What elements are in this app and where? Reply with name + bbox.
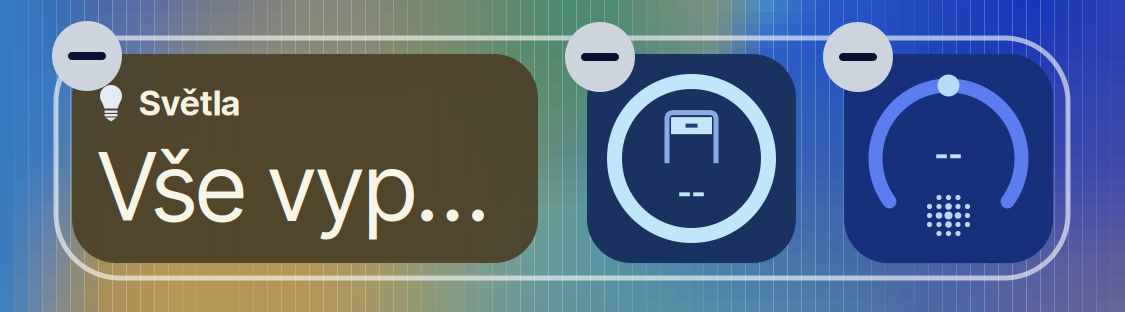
staticText: Vše vyp… — [98, 130, 488, 243]
button[interactable]: Remove widget — [823, 22, 893, 92]
staticText: Světla — [139, 82, 240, 124]
staticText: -- — [677, 173, 705, 212]
button[interactable]: -- — [844, 54, 1053, 263]
button[interactable]: Remove widget — [565, 22, 635, 92]
button[interactable]: Remove widget — [52, 21, 122, 91]
button[interactable]: -- — [587, 54, 796, 263]
staticText: -- — [934, 135, 962, 174]
button[interactable]: Světla — [72, 54, 538, 263]
